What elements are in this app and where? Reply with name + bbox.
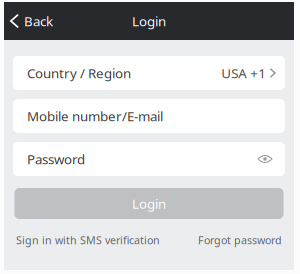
staticText: Country / Region: [27, 64, 131, 82]
staticText: Password: [27, 150, 85, 168]
staticText: Login: [132, 195, 166, 212]
staticText: Sign in with SMS verification: [16, 233, 160, 247]
staticText: Login: [132, 12, 166, 30]
staticText: Back: [24, 12, 53, 30]
staticText: Forgot password: [198, 233, 282, 247]
staticText: Mobile number/E-mail: [27, 107, 163, 125]
button[interactable]: Back: [4, 2, 63, 40]
button[interactable]: Forgot password: [198, 233, 282, 247]
button[interactable]: Country / Region: [13, 56, 285, 90]
staticText: USA +1: [221, 64, 266, 82]
button[interactable]: Login: [14, 188, 283, 219]
button[interactable]: Show password: [255, 149, 275, 169]
button[interactable]: Sign in with SMS verification: [16, 233, 160, 247]
